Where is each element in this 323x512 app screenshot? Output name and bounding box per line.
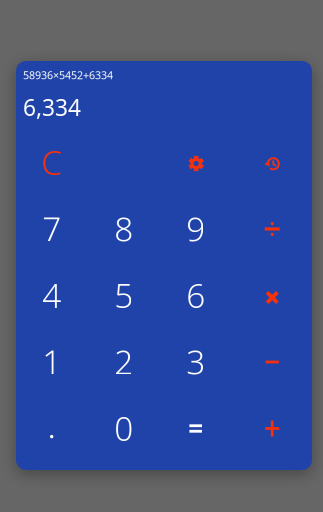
button[interactable]: 3 xyxy=(160,328,232,395)
staticText: 4 xyxy=(42,273,61,317)
staticText: 1 xyxy=(42,339,61,384)
staticText: 3 xyxy=(186,339,205,384)
staticText: 9 xyxy=(186,206,205,251)
button[interactable]: Multiply xyxy=(232,262,304,328)
staticText: 6,334 xyxy=(23,92,81,122)
staticText: 2 xyxy=(114,339,133,384)
staticText: 5 xyxy=(114,273,133,317)
staticText: C xyxy=(41,140,62,184)
button[interactable]: 4 xyxy=(16,262,88,328)
button[interactable]: Settings xyxy=(160,129,232,195)
button[interactable]: 8 xyxy=(88,195,160,262)
staticText: 8 xyxy=(114,206,133,251)
button[interactable]: Subtract xyxy=(232,328,304,395)
button[interactable]: Decimal point xyxy=(16,395,88,461)
button[interactable]: Equals xyxy=(160,395,232,461)
staticText: 0 xyxy=(114,406,133,450)
button[interactable]: 5 xyxy=(88,262,160,328)
button[interactable]: 2 xyxy=(88,328,160,395)
staticText: 58936×5452+6334 xyxy=(23,68,113,82)
staticText: 7 xyxy=(42,206,61,251)
button[interactable]: Add xyxy=(232,395,304,461)
button[interactable]: 1 xyxy=(16,328,88,395)
button[interactable]: Divide xyxy=(232,195,304,262)
button[interactable]: 6 xyxy=(160,262,232,328)
button[interactable]: 7 xyxy=(16,195,88,262)
button[interactable]: C xyxy=(16,129,88,195)
button[interactable]: 0 xyxy=(88,395,160,461)
staticText: 6 xyxy=(186,273,205,317)
button[interactable]: History xyxy=(232,129,304,195)
button[interactable]: 9 xyxy=(160,195,232,262)
